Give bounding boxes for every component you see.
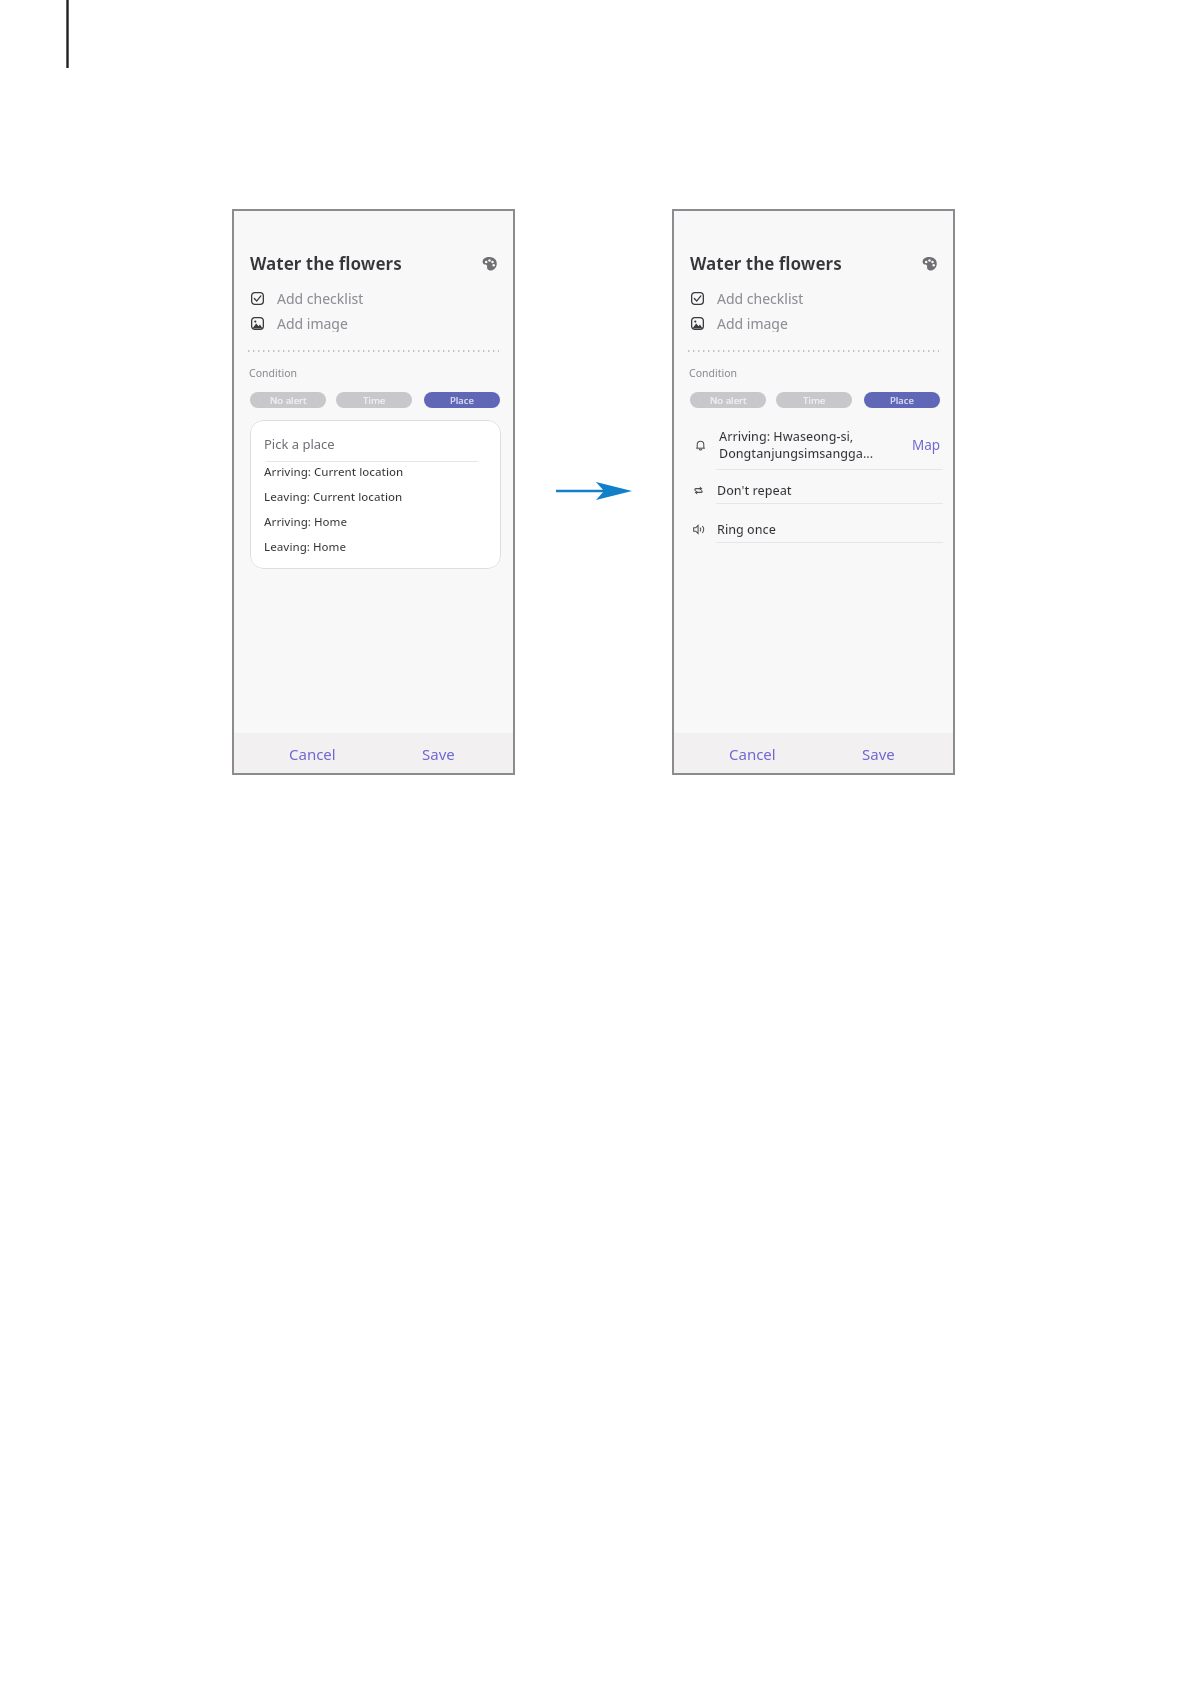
button[interactable]: Don't repeat (690, 474, 943, 506)
button[interactable]: Arriving: Hwaseong-si, Dongtanjungsimsan… (692, 423, 943, 466)
staticText: Pick a place (264, 435, 335, 453)
button[interactable]: Add checklist (691, 289, 804, 307)
staticText: Arriving: Home (264, 514, 348, 530)
staticText: Time (803, 394, 826, 407)
button[interactable]: Water the flowers (250, 252, 402, 275)
button[interactable]: Time (336, 392, 412, 408)
staticText: Leaving: Current location (264, 489, 403, 505)
staticText: Time (363, 394, 386, 407)
button[interactable]: Time (776, 392, 852, 408)
staticText: Add image (277, 314, 348, 332)
button[interactable]: Arriving: Current location (250, 459, 501, 484)
staticText: Save (862, 744, 895, 764)
button[interactable]: Change colour (921, 255, 938, 272)
staticText: No alert (710, 394, 747, 407)
staticText: No alert (270, 394, 307, 407)
button[interactable]: Change colour (481, 255, 498, 272)
staticText: Map (912, 436, 941, 454)
staticText: Add image (717, 314, 788, 332)
button[interactable]: Place (424, 392, 500, 408)
staticText: Add checklist (277, 289, 364, 307)
button[interactable]: No alert (250, 392, 326, 408)
button[interactable]: Add checklist (251, 289, 364, 307)
staticText: Cancel (289, 744, 336, 764)
button[interactable]: No alert (690, 392, 766, 408)
button[interactable]: Ring once (690, 513, 943, 545)
button[interactable]: Water the flowers (690, 252, 842, 275)
button[interactable]: Cancel (249, 733, 375, 775)
staticText: Arriving: Hwaseong-si, Dongtanjungsimsan… (719, 428, 908, 461)
staticText: Arriving: Current location (264, 464, 404, 480)
staticText: Condition (689, 366, 737, 380)
staticText: Add checklist (717, 289, 804, 307)
staticText: Don't repeat (717, 482, 792, 499)
button[interactable]: Leaving: Current location (250, 484, 501, 509)
staticText: Place (890, 394, 914, 407)
staticText: Cancel (729, 744, 776, 764)
staticText: Leaving: Home (264, 539, 347, 555)
button[interactable]: Map (908, 436, 943, 454)
button[interactable]: Save (375, 733, 502, 775)
button[interactable]: Leaving: Home (250, 534, 501, 559)
button[interactable]: Arriving: Home (250, 509, 501, 534)
button[interactable]: Add image (251, 314, 348, 332)
staticText: Condition (249, 366, 297, 380)
button[interactable]: Cancel (689, 733, 815, 775)
button[interactable]: Save (815, 733, 942, 775)
staticText: Save (422, 744, 455, 764)
button[interactable]: Place (864, 392, 940, 408)
staticText: Place (450, 394, 474, 407)
staticText: Ring once (717, 521, 776, 538)
button[interactable]: Add image (691, 314, 788, 332)
